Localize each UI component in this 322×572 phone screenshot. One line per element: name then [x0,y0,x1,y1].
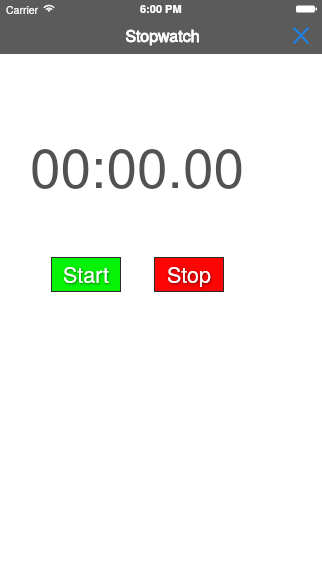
staticText: Start [63,258,109,289]
staticText: 00:00.00 [30,125,245,204]
staticText: Stopwatch [125,24,200,47]
staticText: Stopwatch [125,24,200,47]
button[interactable]: Start [51,257,121,292]
staticText: 6:00 PM [140,1,182,17]
button[interactable]: Stop [154,257,224,292]
staticText: Carrier [6,2,39,17]
staticText: Stop [167,258,211,289]
button[interactable]: Close [286,20,316,50]
